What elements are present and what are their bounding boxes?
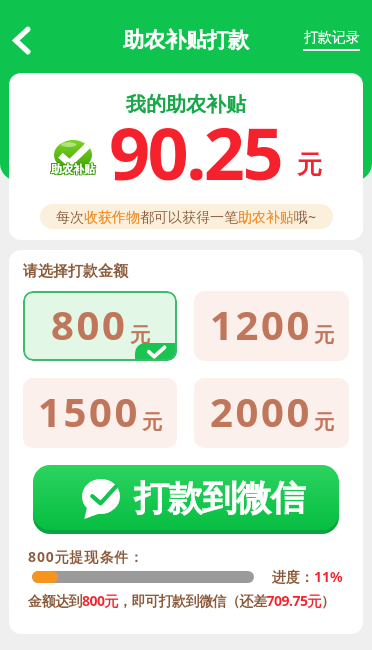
staticText: 助农补贴打款 (123, 27, 249, 53)
staticText: 助农补贴 (50, 162, 94, 176)
button[interactable]: 打款记录 (303, 29, 360, 51)
staticText: 助农补贴 (51, 162, 95, 176)
staticText: 每次收获作物都可以获得一笔助农补贴哦~ (56, 207, 317, 226)
staticText: 1200 (210, 297, 312, 351)
staticText: 元 (130, 323, 150, 348)
staticText: 助农补贴 (52, 162, 96, 176)
staticText: 我的助农补贴 (126, 92, 246, 117)
staticText: 元 (314, 323, 334, 348)
button[interactable]: Back (1, 20, 41, 60)
staticText: 90.25 (109, 103, 281, 201)
button[interactable]: 打款到微信 (33, 465, 339, 530)
staticText: 助农补贴 (50, 161, 94, 175)
staticText: 请选择打款金额 (23, 262, 128, 281)
staticText: 2000 (210, 384, 312, 438)
staticText: 元 (142, 410, 162, 435)
staticText: 800 (51, 297, 128, 351)
button[interactable]: 1500 (23, 378, 177, 448)
staticText: 助农补贴 (52, 161, 96, 175)
staticText: 进度：11% (272, 567, 343, 586)
staticText: 金额达到800元，即可打款到微信（还差709.75元） (28, 591, 335, 610)
staticText: 助农补贴 (51, 161, 95, 175)
staticText: 1500 (38, 384, 140, 438)
staticText: 800元提现条件： (28, 547, 145, 566)
staticText: 元 (297, 149, 322, 180)
button[interactable]: 2000 (194, 378, 349, 448)
staticText: 助农补贴 (52, 163, 96, 177)
staticText: 助农补贴 (50, 163, 94, 177)
staticText: 打款到微信 (134, 476, 305, 520)
button[interactable]: 800 (23, 291, 177, 361)
staticText: 元 (314, 410, 334, 435)
button[interactable]: 1200 (194, 291, 349, 361)
staticText: 助农补贴 (51, 163, 95, 177)
staticText: 打款记录 (304, 29, 360, 47)
